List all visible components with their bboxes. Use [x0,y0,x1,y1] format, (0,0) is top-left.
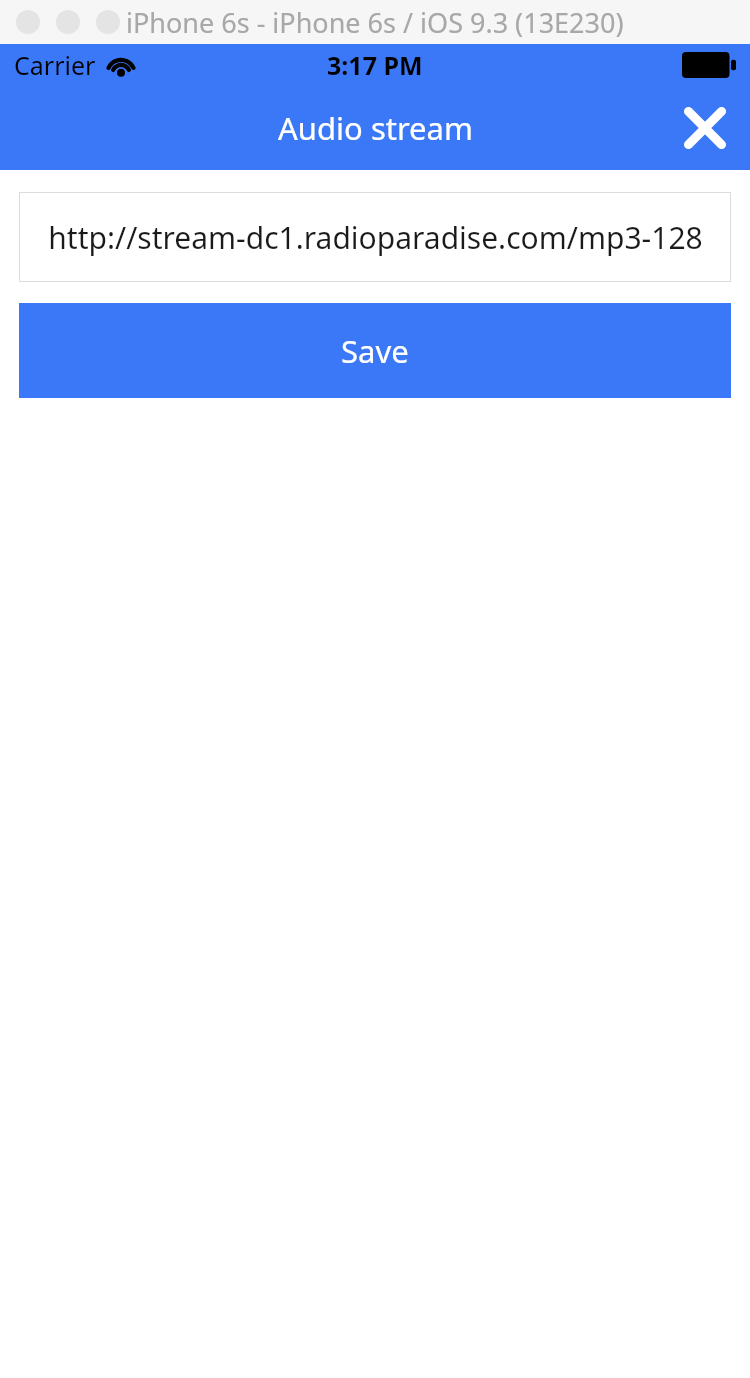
button[interactable]: http://stream-dc1.radioparadise.com/mp3-… [19,192,731,282]
button[interactable]: Save [19,303,731,398]
staticText: Save [341,330,409,372]
staticText: 3:17 PM [327,48,423,82]
staticText: http://stream-dc1.radioparadise.com/mp3-… [48,217,703,258]
staticText: iPhone 6s - iPhone 6s / iOS 9.3 (13E230) [126,4,624,41]
button[interactable]: Close [674,97,736,159]
staticText: Audio stream [278,107,473,149]
staticText: Carrier [14,48,96,82]
